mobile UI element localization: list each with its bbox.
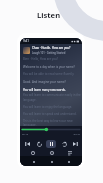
staticText: This is the best way to learn our new bbox=[23, 119, 73, 123]
button[interactable]: Recent apps bbox=[65, 158, 72, 165]
button[interactable]: Rewind 15 seconds bbox=[35, 140, 43, 148]
staticText: 9:41 bbox=[23, 39, 29, 43]
button[interactable]: Sleep timer bbox=[48, 149, 55, 156]
button[interactable]: Forward 15 seconds bbox=[60, 140, 68, 148]
staticText: language. bbox=[23, 123, 37, 127]
staticText: You will learn to speak and understand. bbox=[23, 112, 77, 116]
staticText: Good. And imagine your name? bbox=[23, 80, 66, 84]
staticText: You will learn to enjoy the language. bbox=[23, 105, 73, 109]
button[interactable]: Previous track bbox=[23, 140, 31, 148]
staticText: Welcome to a day when is your name? bbox=[23, 65, 75, 69]
staticText: 00:16 bbox=[22, 132, 29, 135]
button[interactable]: Home bbox=[48, 158, 55, 165]
button[interactable]: Playback speed bbox=[29, 149, 36, 156]
button[interactable]: Next track bbox=[71, 140, 79, 148]
button[interactable]: Back bbox=[30, 158, 37, 165]
staticText: Listen bbox=[37, 10, 61, 20]
staticText: Chao · Hustle. How are you? bbox=[32, 46, 71, 50]
staticText: You will be able to read some fluently. bbox=[23, 72, 75, 76]
staticText: Laugh 101 · Getting Started bbox=[32, 51, 66, 55]
staticText: You will learn to communicate easily in … bbox=[23, 93, 81, 97]
button[interactable]: Pause bbox=[46, 140, 56, 148]
staticText: -02:44 bbox=[73, 132, 80, 135]
staticText: You will learn many new words. bbox=[23, 88, 66, 92]
button[interactable]: Cast to device bbox=[66, 149, 73, 156]
staticText: Bien · Hello, How are you? bbox=[23, 57, 59, 61]
staticText: language. bbox=[23, 98, 37, 102]
